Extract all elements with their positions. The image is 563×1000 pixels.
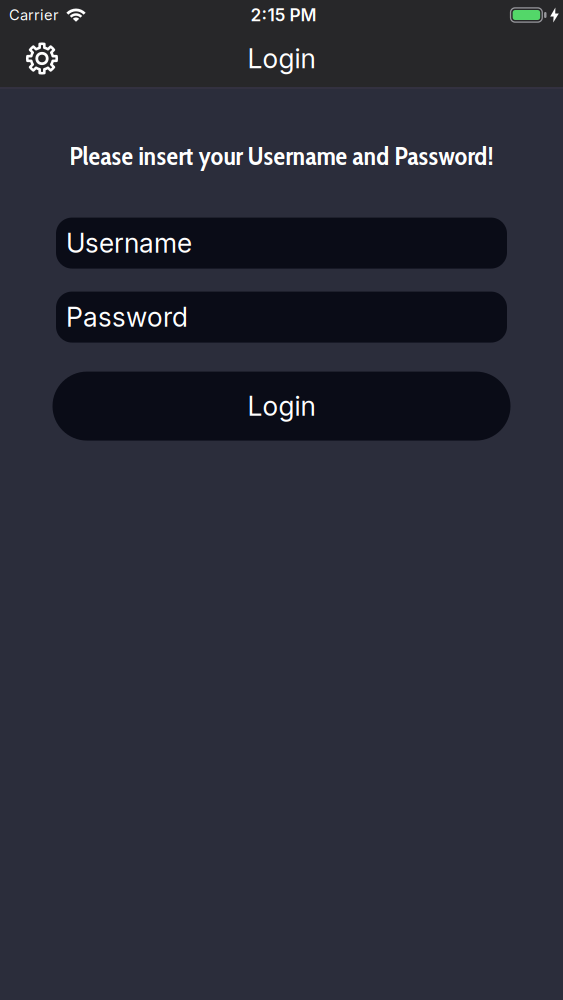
staticText: Login — [247, 390, 315, 422]
staticText: Login — [247, 42, 315, 75]
staticText: Carrier — [9, 6, 59, 24]
staticText: Password — [66, 301, 188, 333]
staticText: 2:15 PM — [250, 4, 316, 25]
button[interactable]: Settings — [22, 38, 62, 78]
textField[interactable]: Username — [56, 218, 507, 269]
staticText: Username — [66, 227, 192, 259]
secureTextField[interactable]: Password — [56, 292, 507, 343]
staticText: Please insert your Username and Password… — [69, 140, 493, 172]
button[interactable]: Login — [52, 372, 510, 441]
